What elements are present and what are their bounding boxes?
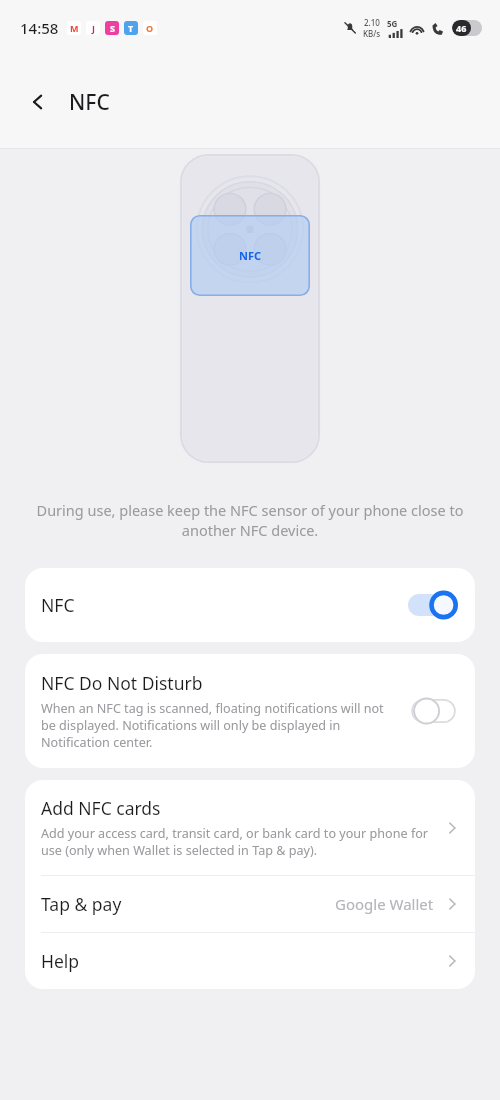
staticText: 2.10 bbox=[364, 17, 380, 28]
button[interactable]: Back bbox=[20, 84, 56, 120]
staticText: NFC bbox=[239, 248, 262, 263]
staticText: Help bbox=[41, 949, 80, 973]
staticText: O bbox=[146, 22, 154, 34]
button[interactable]: NFC on bbox=[408, 590, 459, 620]
staticText: Add your access card, transit card, or b… bbox=[41, 825, 433, 859]
button[interactable]: NFC Do Not Disturb bbox=[25, 654, 475, 768]
staticText: When an NFC tag is scanned, floating not… bbox=[41, 700, 396, 751]
staticText: 14:58 bbox=[20, 18, 59, 38]
button[interactable]: NFC bbox=[25, 568, 475, 642]
staticText: KB/s bbox=[363, 28, 381, 39]
staticText: J bbox=[92, 22, 95, 34]
staticText: NFC Do Not Disturb bbox=[41, 671, 203, 695]
staticText: NFC bbox=[41, 593, 75, 617]
staticText: Add NFC cards bbox=[41, 796, 161, 820]
button[interactable]: Help bbox=[25, 933, 475, 989]
staticText: 46 bbox=[456, 22, 467, 34]
button[interactable]: NFC Do Not Disturb off bbox=[408, 696, 459, 726]
staticText: NFC bbox=[69, 88, 110, 117]
button[interactable]: Tap & pay bbox=[25, 876, 475, 932]
staticText: 5G bbox=[387, 18, 398, 29]
staticText: During use, please keep the NFC sensor o… bbox=[30, 500, 470, 541]
staticText: T bbox=[128, 22, 134, 34]
button[interactable]: Add NFC cards bbox=[25, 780, 475, 875]
staticText: S bbox=[110, 22, 115, 34]
staticText: M bbox=[70, 22, 79, 34]
staticText: Tap & pay bbox=[41, 892, 122, 916]
staticText: Google Wallet bbox=[335, 894, 434, 914]
